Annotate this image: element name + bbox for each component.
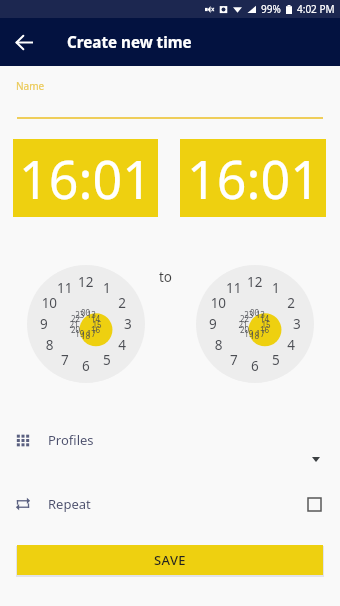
staticText: to — [159, 268, 173, 286]
button[interactable]: Back — [7, 25, 41, 59]
button[interactable]: Profiles — [0, 423, 340, 457]
button[interactable]: Name — [16, 79, 45, 93]
button[interactable]: 16:01 — [180, 139, 326, 217]
staticText: 4:02 PM — [297, 2, 335, 16]
staticText: 99% — [261, 2, 281, 16]
button[interactable]: Expand profiles — [312, 457, 320, 462]
staticText: Repeat — [48, 495, 91, 513]
button[interactable]: Time picker — [196, 265, 314, 383]
button[interactable]: SAVE — [17, 545, 323, 575]
button[interactable]: Time picker — [27, 265, 145, 383]
staticText: 16:01 — [19, 143, 152, 214]
staticText: 16:01 — [187, 143, 320, 214]
button[interactable]: Repeat — [0, 487, 340, 521]
staticText: SAVE — [154, 551, 186, 569]
staticText: Profiles — [48, 431, 94, 449]
button[interactable]: 16:01 — [13, 139, 158, 217]
staticText: Create new time — [67, 32, 192, 53]
